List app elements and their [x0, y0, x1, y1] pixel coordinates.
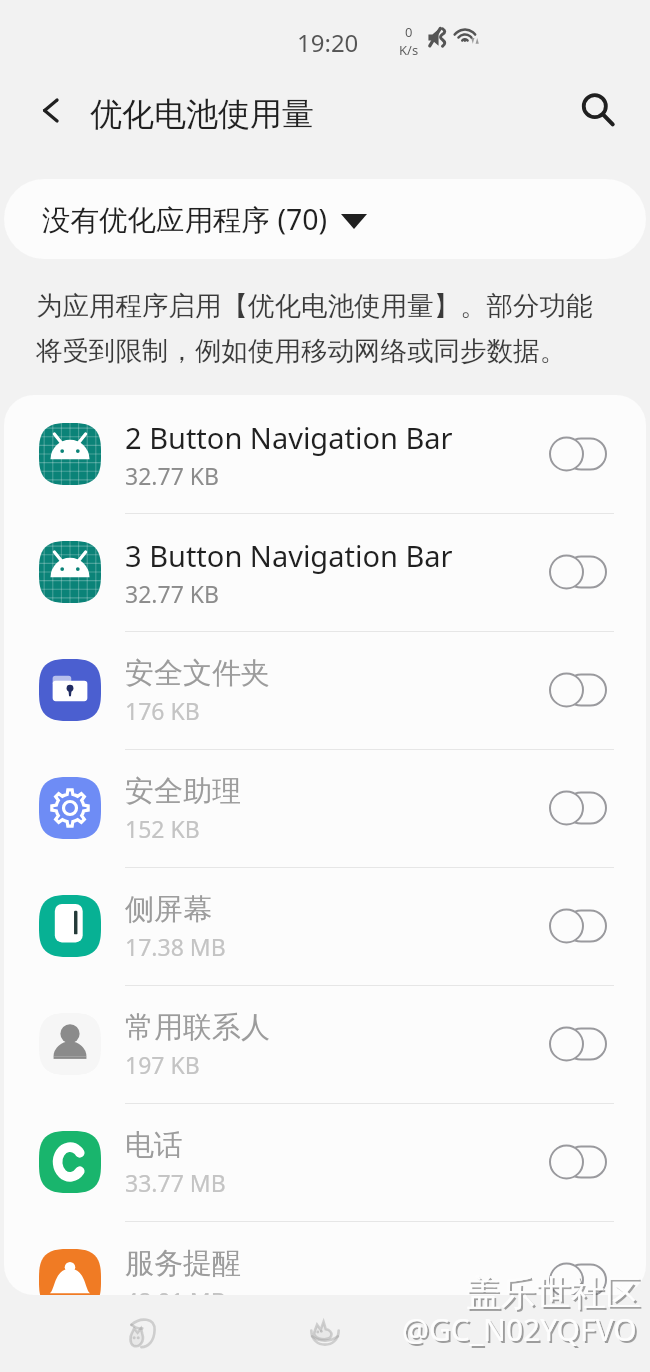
- staticText: 152 KB: [125, 813, 200, 844]
- staticText: 盖乐世社区: [468, 1273, 643, 1317]
- button[interactable]: 安全助理: [4, 749, 646, 867]
- staticText: 2 Button Navigation Bar: [125, 418, 453, 457]
- staticText: 侧屏幕: [125, 891, 212, 928]
- staticText: 为应用程序启用【优化电池使用量】。部分功能将受到限制，例如使用移动网络或同步数据…: [36, 289, 608, 367]
- staticText: 盖乐世社区: [466, 1271, 641, 1315]
- button[interactable]: Toggle: [549, 908, 607, 944]
- staticText: 32.77 KB: [125, 460, 219, 491]
- staticText: 服务提醒: [125, 1245, 241, 1282]
- button[interactable]: 2 Button Navigation Bar: [4, 395, 646, 513]
- staticText: 32.77 KB: [125, 578, 219, 609]
- button[interactable]: Toggle: [549, 1144, 607, 1180]
- staticText: 33.77 MB: [125, 1167, 226, 1198]
- staticText: 安全文件夹: [125, 655, 270, 692]
- button[interactable]: Toggle: [549, 1262, 607, 1295]
- button[interactable]: 没有优化应用程序 (70): [4, 179, 646, 259]
- staticText: 176 KB: [125, 695, 200, 726]
- staticText: 优化电池使用量: [90, 94, 314, 134]
- button[interactable]: 服务提醒: [4, 1221, 646, 1295]
- button[interactable]: Toggle: [549, 672, 607, 708]
- button[interactable]: Toggle: [549, 554, 607, 590]
- button[interactable]: Toggle: [549, 790, 607, 826]
- staticText: @GC_N02YQFVO: [402, 1309, 637, 1350]
- button[interactable]: Toggle: [549, 1026, 607, 1062]
- staticText: 3 Button Navigation Bar: [125, 536, 453, 575]
- staticText: 0: [405, 23, 413, 41]
- staticText: 电话: [125, 1127, 183, 1164]
- staticText: 常用联系人: [125, 1009, 270, 1046]
- button[interactable]: 安全文件夹: [4, 631, 646, 749]
- staticText: 安全助理: [125, 773, 241, 810]
- staticText: 48.01 MB: [125, 1285, 226, 1295]
- button[interactable]: 侧屏幕: [4, 867, 646, 985]
- button[interactable]: 电话: [4, 1103, 646, 1221]
- staticText: K/s: [399, 41, 419, 59]
- staticText: 19:20: [297, 26, 359, 59]
- staticText: 197 KB: [125, 1049, 200, 1080]
- button[interactable]: Search: [570, 82, 626, 138]
- button[interactable]: 常用联系人: [4, 985, 646, 1103]
- button[interactable]: Back: [23, 82, 79, 138]
- staticText: 没有优化应用程序 (70): [42, 200, 328, 239]
- staticText: 17.38 MB: [125, 931, 226, 962]
- staticText: @GC_N02YQFVO: [404, 1311, 639, 1352]
- button[interactable]: 3 Button Navigation Bar: [4, 513, 646, 631]
- button[interactable]: Toggle: [549, 436, 607, 472]
